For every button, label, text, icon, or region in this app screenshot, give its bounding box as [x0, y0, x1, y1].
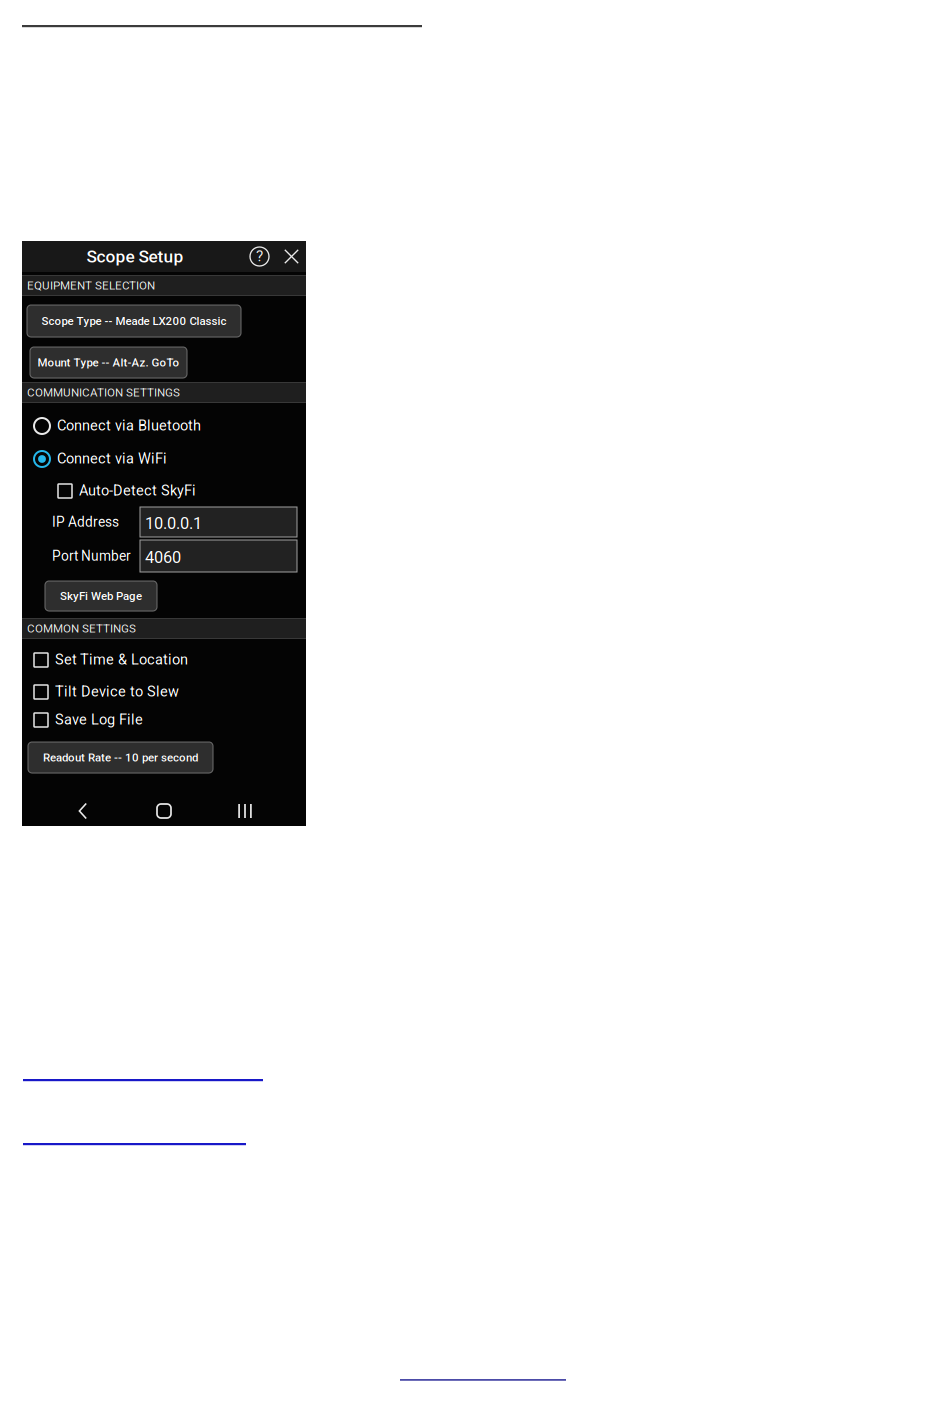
button[interactable]: Back	[60, 795, 106, 827]
staticText: Tilt Device to Slew	[55, 683, 179, 700]
button[interactable]: Mount Type -- Alt-Az. GoTo	[30, 347, 187, 378]
button[interactable]: Auto-Detect SkyFi	[58, 480, 306, 502]
button[interactable]: Scope Type -- Meade LX200 Classic	[27, 305, 241, 337]
staticText: Port Number	[52, 548, 131, 564]
staticText: 4060	[145, 548, 181, 567]
staticText: Scope Type -- Meade LX200 Classic	[41, 314, 226, 328]
staticText: ?	[256, 247, 263, 265]
button[interactable]: Recent apps	[222, 795, 268, 827]
button[interactable]: 4060	[140, 540, 297, 572]
staticText: 10.0.0.1	[145, 514, 202, 533]
button[interactable]: Home	[141, 795, 187, 827]
staticText: Scope Setup	[86, 246, 183, 267]
staticText: Save Log File	[55, 711, 143, 728]
button[interactable]: 10.0.0.1	[140, 507, 297, 537]
button[interactable]: Link	[400, 1379, 566, 1381]
staticText: COMMUNICATION SETTINGS	[27, 386, 180, 399]
staticText: SkyFi Web Page	[60, 589, 142, 603]
staticText: Mount Type -- Alt-Az. GoTo	[37, 356, 179, 369]
staticText: Set Time & Location	[55, 651, 188, 668]
staticText: Readout Rate -- 10 per second	[43, 751, 198, 764]
staticText: EQUIPMENT SELECTION	[27, 279, 155, 292]
button[interactable]: Connect via Bluetooth	[34, 414, 306, 438]
button[interactable]: Set Time & Location	[34, 649, 306, 671]
button[interactable]: Tilt Device to Slew	[34, 681, 306, 703]
button[interactable]: Save Log File	[34, 709, 306, 731]
staticText: IP Address	[52, 514, 119, 530]
staticText: Auto-Detect SkyFi	[79, 482, 196, 499]
staticText: Connect via Bluetooth	[57, 417, 201, 434]
button[interactable]: Help	[249, 246, 270, 267]
staticText: COMMON SETTINGS	[27, 622, 136, 635]
button[interactable]: SkyFi Web Page	[45, 581, 157, 611]
button[interactable]: Connect via WiFi	[34, 447, 306, 471]
button[interactable]: Close	[284, 249, 299, 264]
staticText: Connect via WiFi	[57, 450, 167, 467]
button[interactable]: Readout Rate -- 10 per second	[28, 742, 213, 773]
